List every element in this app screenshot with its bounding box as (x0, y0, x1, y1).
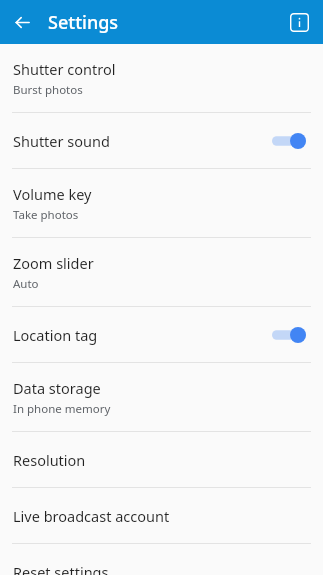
staticText: Zoom slider (13, 253, 94, 273)
staticText: Settings (48, 10, 119, 35)
staticText: Data storage (13, 378, 101, 398)
button[interactable]: Reset settings (0, 544, 323, 575)
staticText: Volume key (13, 184, 92, 204)
staticText: Auto (13, 276, 39, 292)
staticText: Live broadcast account (13, 506, 170, 526)
staticText: Reset settings (13, 562, 109, 575)
staticText: Take photos (13, 207, 79, 223)
button[interactable]: Toggle Location tag (268, 323, 310, 347)
staticText: Shutter sound (13, 131, 110, 151)
button[interactable]: Live broadcast account (0, 488, 323, 543)
button[interactable]: Location tag (0, 307, 323, 362)
button[interactable]: Shutter control (0, 44, 323, 112)
staticText: Shutter control (13, 59, 116, 79)
button[interactable]: Back (6, 6, 38, 38)
button[interactable]: Data storage (0, 363, 323, 431)
staticText: Burst photos (13, 82, 83, 98)
staticText: In phone memory (13, 401, 111, 417)
button[interactable]: Shutter sound (0, 113, 323, 168)
button[interactable]: Resolution (0, 432, 323, 487)
staticText: Location tag (13, 325, 98, 345)
staticText: Resolution (13, 450, 86, 470)
button[interactable]: Information (283, 6, 315, 38)
button[interactable]: Zoom slider (0, 238, 323, 306)
button[interactable]: Toggle Shutter sound (268, 129, 310, 153)
button[interactable]: Volume key (0, 169, 323, 237)
